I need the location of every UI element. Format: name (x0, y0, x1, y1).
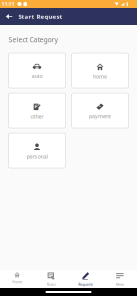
button[interactable]: More (103, 270, 137, 288)
staticText: home (93, 73, 107, 80)
button[interactable]: Back (2, 8, 15, 25)
button[interactable]: auto (8, 53, 65, 88)
staticText: payment (89, 112, 111, 120)
staticText: Select Category (8, 35, 57, 44)
staticText: Rules (47, 282, 56, 287)
button[interactable]: other (8, 93, 65, 128)
staticText: More (116, 282, 124, 287)
button[interactable]: home (71, 53, 128, 88)
staticText: other (30, 113, 43, 120)
button[interactable]: payment (71, 93, 128, 128)
staticText: Start Request (18, 12, 62, 20)
button[interactable]: Rules (34, 270, 68, 288)
staticText: personal (26, 153, 47, 160)
staticText: auto (31, 72, 42, 80)
button[interactable]: Requests (68, 270, 103, 288)
staticText: Requests (78, 282, 93, 287)
staticText: 11:11 (1, 0, 14, 8)
button[interactable]: Home (0, 270, 34, 288)
button[interactable]: personal (8, 133, 65, 168)
staticText: Home (12, 280, 22, 284)
